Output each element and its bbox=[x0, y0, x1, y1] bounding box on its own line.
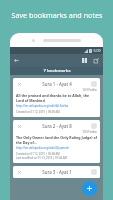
button[interactable]: Note bbox=[91, 169, 97, 175]
button[interactable]: Remove bookmark bbox=[16, 81, 22, 87]
staticText: Save bookmarks and notes bbox=[11, 10, 103, 20]
button[interactable]: Remove bookmark bbox=[16, 123, 22, 129]
staticText: Created on 01 12, 2015 | 05:08 AM bbox=[16, 152, 60, 156]
button[interactable]: Remove bookmark bbox=[13, 120, 100, 163]
button[interactable]: Remove bookmark bbox=[13, 166, 100, 178]
staticText: 10:3 Fatiha bbox=[82, 130, 97, 134]
staticText: Created on 01 12, 2015 | 05:09 AM bbox=[16, 110, 60, 114]
button[interactable]: Note bbox=[91, 123, 97, 129]
staticText: The Only Owner (and the Only Ruling Judg… bbox=[16, 135, 97, 145]
staticText: Sura 3 - Ayat 1 bbox=[42, 169, 72, 175]
button[interactable]: Bookmarks bbox=[80, 56, 89, 65]
button[interactable]: Back bbox=[12, 56, 21, 65]
staticText: Sura 2 - Ayat 8 bbox=[42, 123, 72, 129]
staticText: All the praised and thanks be to Allah, … bbox=[16, 93, 97, 103]
button[interactable]: Add bookmark bbox=[82, 181, 97, 196]
button[interactable]: Remove bookmark bbox=[13, 78, 100, 117]
staticText: 5:09 bbox=[93, 48, 101, 53]
staticText: Sura 1 - Ayat 4 bbox=[42, 81, 72, 87]
staticText: http://en.wikipedia.org/wiki/Al-Fatiha bbox=[16, 104, 69, 108]
button[interactable]: Remove bookmark bbox=[16, 169, 22, 175]
button[interactable]: Share bbox=[92, 56, 101, 65]
staticText: 7 bookmarks bbox=[43, 68, 71, 74]
staticText: http://en.wikipedia.org/wiki/Qiyamah bbox=[16, 146, 69, 150]
staticText: Last modified on 01 13, 2015 | 07:44 AM bbox=[16, 156, 67, 160]
button[interactable]: Note bbox=[91, 81, 97, 87]
staticText: 10:3 Fatiha bbox=[82, 88, 97, 92]
